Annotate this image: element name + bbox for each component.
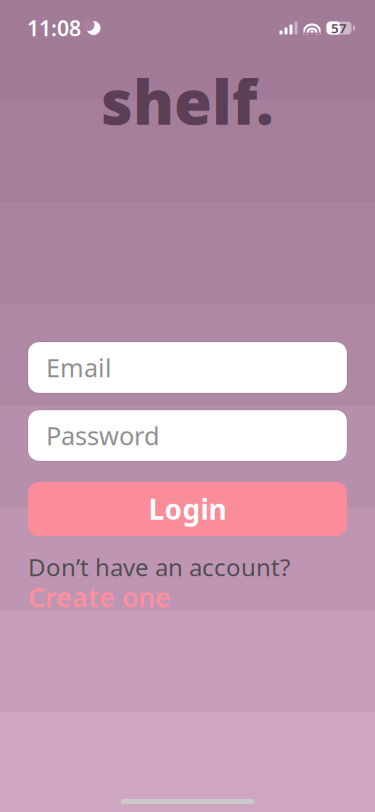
staticText: Don’t have an account? [28, 551, 290, 583]
button[interactable]: Password [28, 410, 347, 461]
staticText: shelf. [101, 60, 274, 142]
staticText: Create one [28, 579, 171, 615]
staticText: Email [46, 351, 112, 384]
staticText: Password [46, 419, 160, 452]
button[interactable]: Login [28, 482, 347, 536]
button[interactable]: Email [28, 342, 347, 393]
staticText: Login [148, 490, 226, 528]
staticText: 57 [331, 19, 347, 37]
button[interactable]: Create one [28, 580, 347, 614]
staticText: 11:08 [27, 14, 81, 42]
